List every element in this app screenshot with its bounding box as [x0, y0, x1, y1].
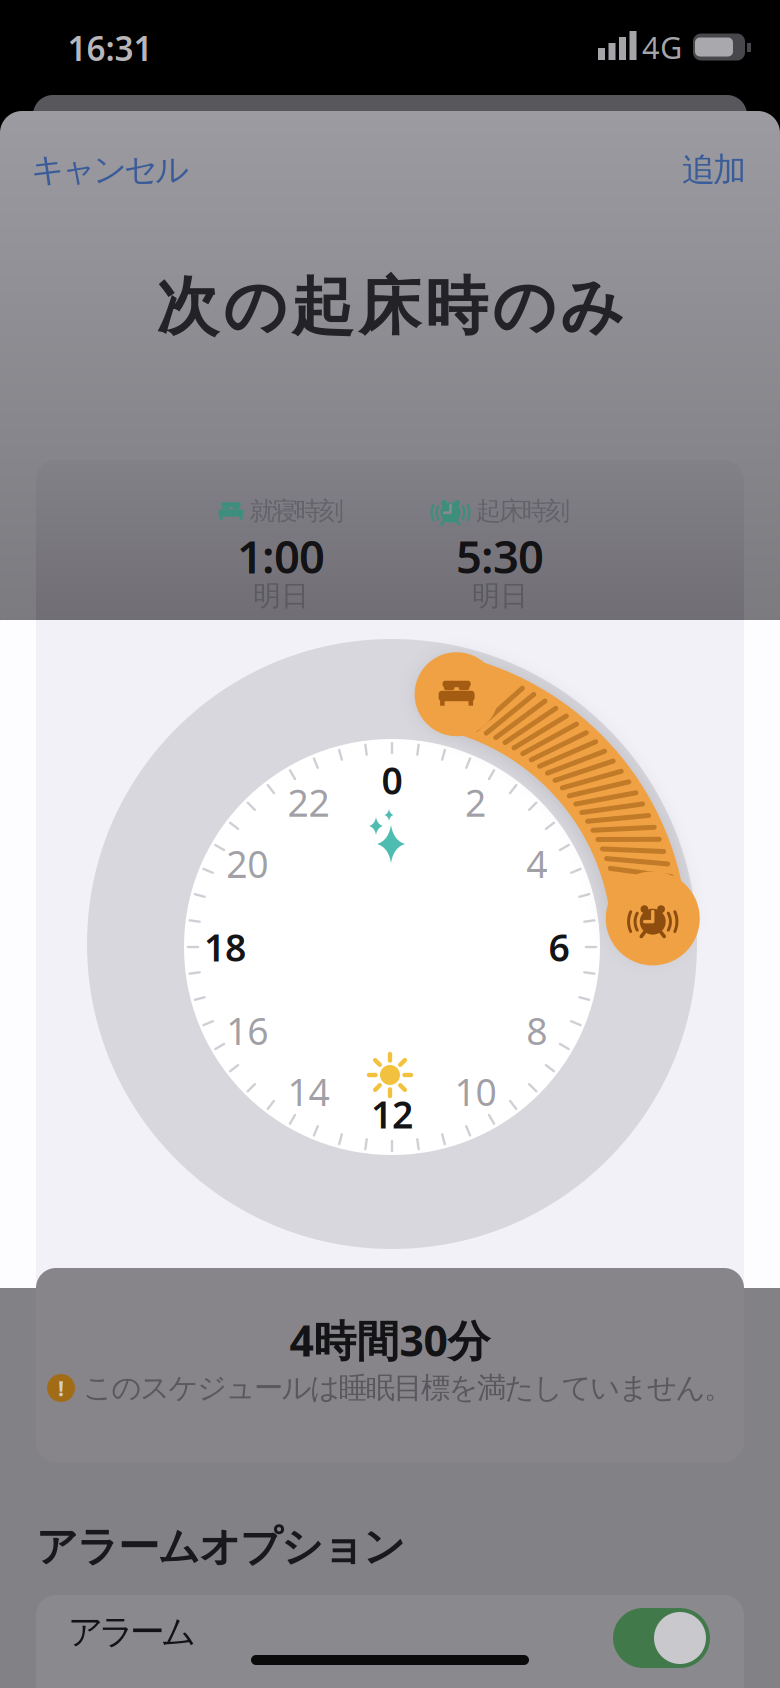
staticText: 0	[381, 755, 402, 805]
staticText: 16	[226, 1006, 268, 1055]
staticText: 10	[454, 1067, 496, 1116]
staticText: 6	[548, 922, 569, 972]
staticText: 20	[226, 839, 268, 888]
staticText: キャンセル	[31, 149, 189, 190]
staticText: 4G	[642, 27, 682, 67]
staticText: このスケジュールは睡眠目標を満たしていません。	[83, 1370, 733, 1406]
staticText: 18	[204, 922, 246, 972]
staticText: !	[58, 1374, 64, 1402]
staticText: 12	[371, 1089, 413, 1139]
staticText: 明日	[253, 579, 309, 613]
staticText: 明日	[472, 579, 528, 613]
staticText: 5:30	[456, 526, 544, 586]
button[interactable]: 追加	[682, 149, 746, 190]
staticText: 就寝時刻	[249, 495, 343, 526]
staticText: 2	[465, 778, 486, 827]
button[interactable]: アラーム	[613, 1608, 710, 1668]
staticText: 16:31	[67, 26, 152, 70]
staticText: 4時間30分	[289, 1312, 490, 1368]
staticText: 14	[287, 1067, 329, 1116]
staticText: 追加	[682, 149, 746, 190]
button[interactable]: キャンセル	[31, 149, 189, 190]
staticText: アラーム	[68, 1611, 196, 1653]
staticText: 次の起床時のみ	[156, 268, 624, 345]
staticText: アラームオプション	[36, 1522, 405, 1572]
staticText: 22	[287, 778, 329, 827]
staticText: 1:00	[237, 526, 325, 586]
staticText: 起床時刻	[476, 495, 570, 526]
staticText: 4	[526, 839, 547, 888]
staticText: 8	[526, 1006, 547, 1055]
